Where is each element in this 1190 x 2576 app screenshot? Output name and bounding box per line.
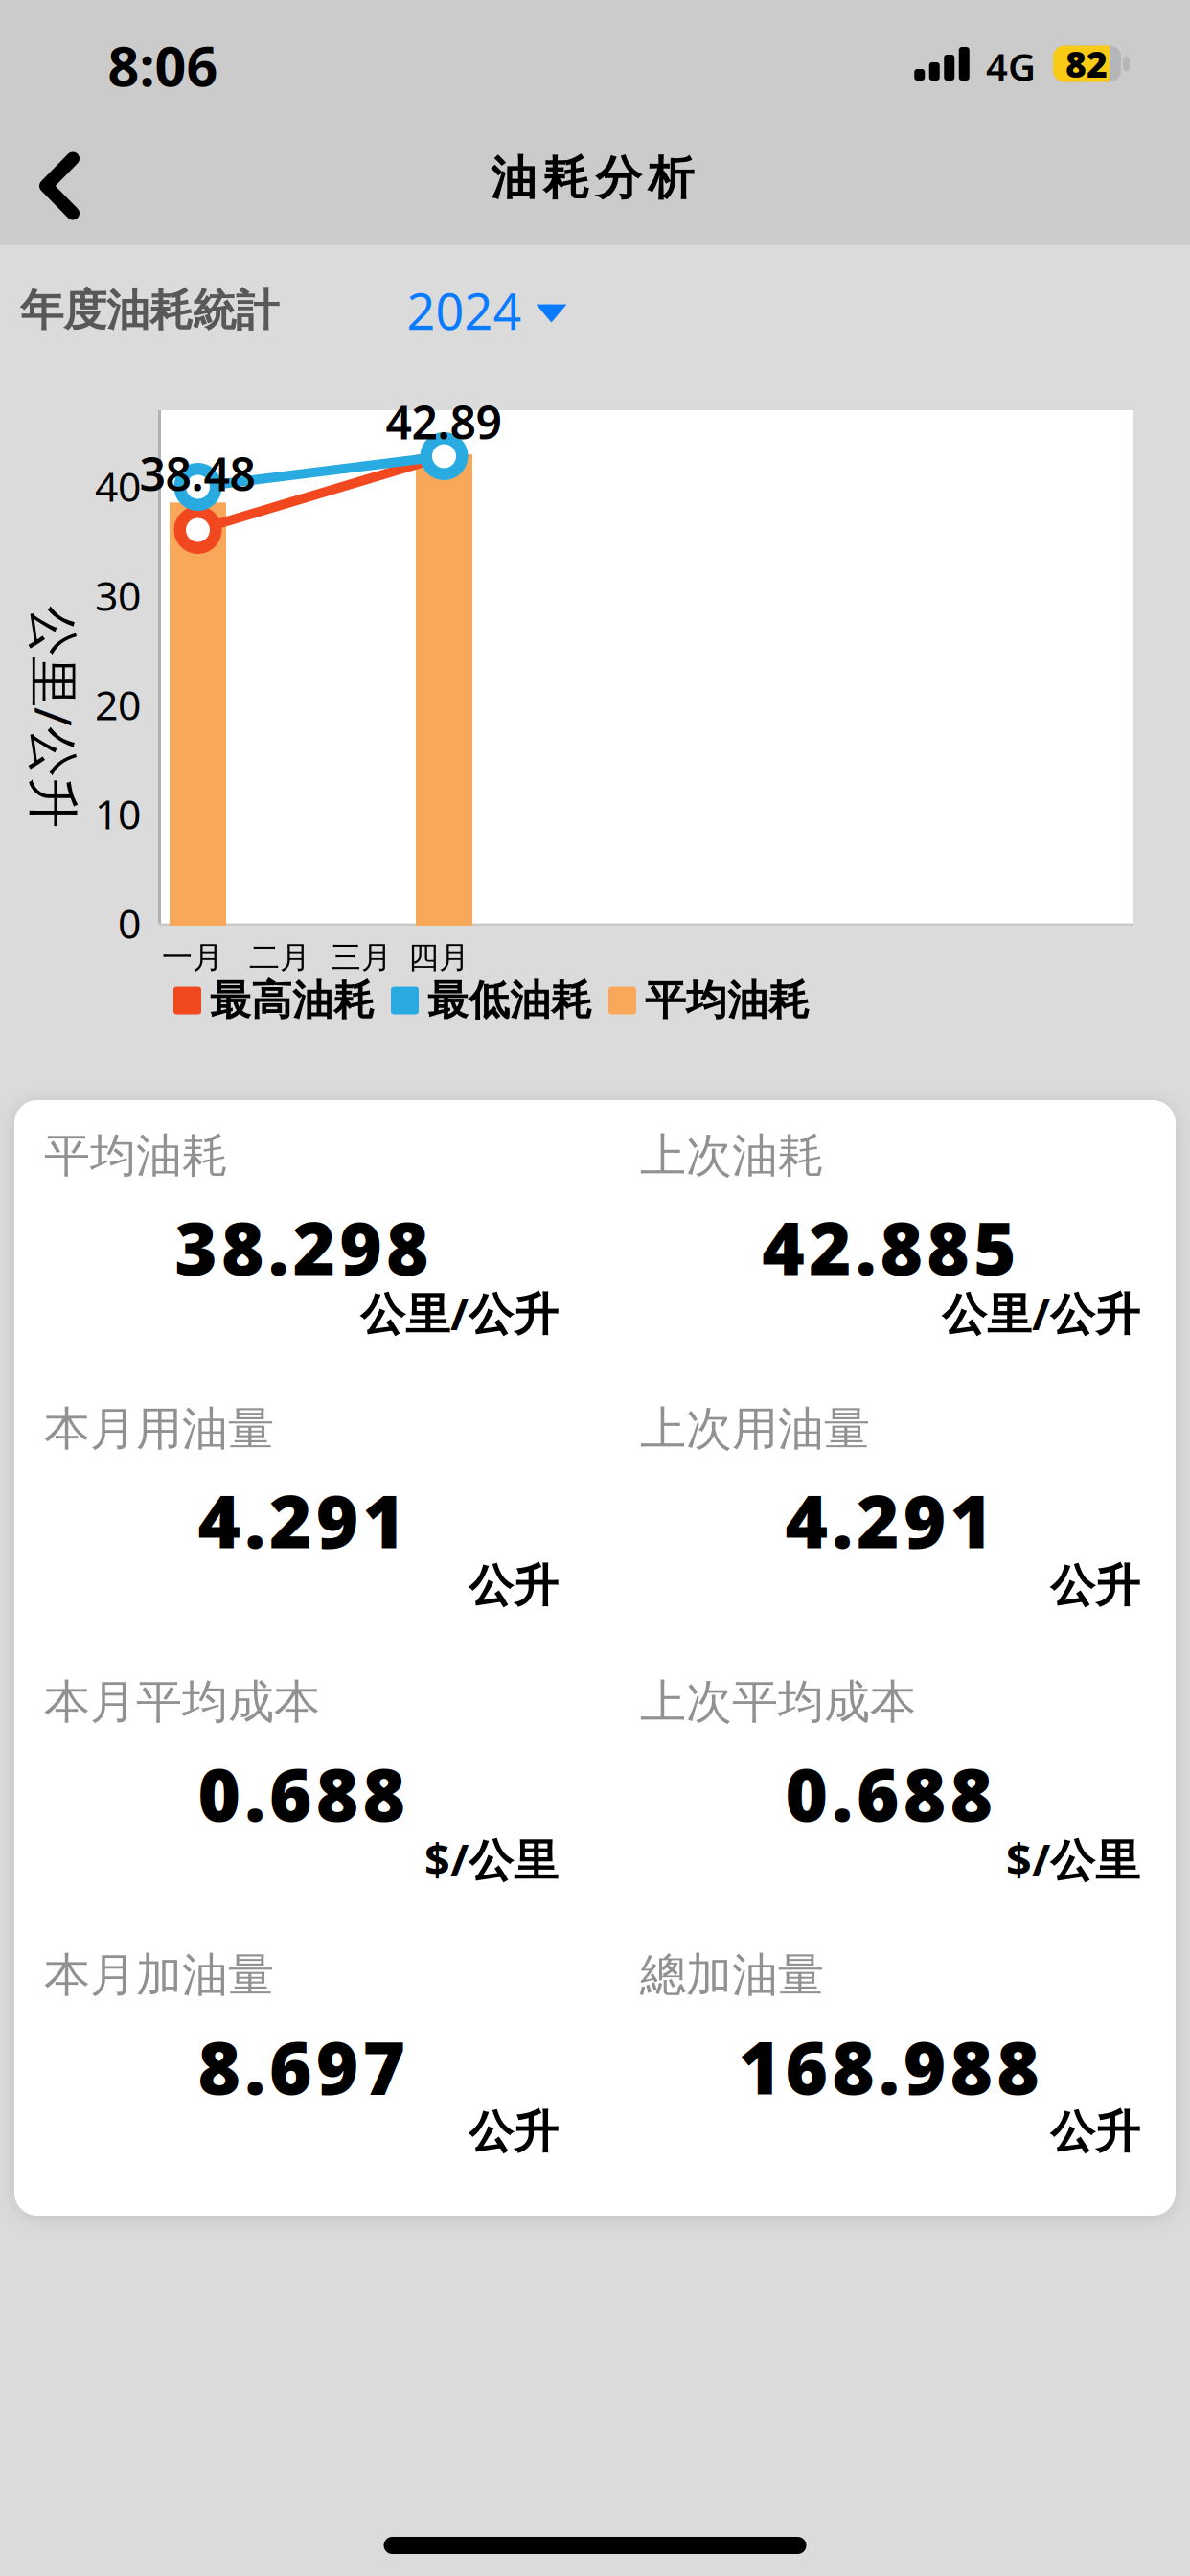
staticText: 本月用油量 (44, 1401, 274, 1457)
staticText: 公升 (1050, 2105, 1140, 2160)
staticText: 10 (95, 787, 141, 841)
staticText: 上次平均成本 (640, 1674, 916, 1730)
button[interactable]: Back (34, 147, 84, 225)
staticText: 42.885 (762, 1198, 1016, 1295)
staticText: 公升 (1050, 1559, 1140, 1613)
staticText: 公里/公升 (942, 1283, 1140, 1343)
staticText: 38.48 (139, 443, 255, 504)
staticText: 一月 (162, 938, 223, 976)
staticText: 2024 (407, 277, 522, 344)
staticText: 四月 (408, 938, 469, 976)
staticText: 本月加油量 (44, 1947, 274, 2003)
staticText: 8:06 (108, 29, 218, 102)
staticText: 年度油耗統計 (20, 284, 279, 337)
staticText: 二月 (249, 938, 310, 976)
staticText: 4.291 (785, 1472, 993, 1568)
staticText: 三月 (331, 938, 392, 976)
staticText: 0.688 (198, 1745, 406, 1841)
staticText: 公里/公升 (0, 683, 166, 751)
staticText: 公升 (469, 1559, 559, 1613)
staticText: 本月平均成本 (44, 1674, 320, 1730)
staticText: 38.298 (174, 1198, 429, 1295)
staticText: 30 (95, 568, 141, 622)
staticText: 0.688 (785, 1745, 993, 1841)
staticText: 平均油耗 (645, 975, 810, 1026)
staticText: $/公里 (424, 1829, 559, 1889)
staticText: 82 (1065, 40, 1108, 87)
staticText: 公里/公升 (360, 1283, 559, 1343)
staticText: 0 (118, 896, 141, 950)
staticText: 上次用油量 (640, 1401, 870, 1457)
staticText: 168.988 (739, 2018, 1040, 2114)
staticText: 總加油量 (640, 1947, 824, 2003)
staticText: 40 (95, 459, 141, 513)
staticText: 8.697 (198, 2018, 406, 2114)
staticText: 油耗分析 (490, 150, 694, 207)
staticText: 最低油耗 (427, 975, 592, 1026)
staticText: 平均油耗 (44, 1127, 228, 1184)
staticText: 42.89 (386, 391, 502, 452)
staticText: 4G (986, 41, 1036, 92)
staticText: 20 (95, 677, 141, 732)
staticText: 4.291 (198, 1472, 406, 1568)
staticText: 上次油耗 (640, 1127, 824, 1184)
button[interactable]: 2024 (407, 277, 567, 344)
staticText: 最高油耗 (210, 975, 375, 1026)
staticText: $/公里 (1006, 1829, 1140, 1889)
staticText: 公升 (469, 2105, 559, 2160)
